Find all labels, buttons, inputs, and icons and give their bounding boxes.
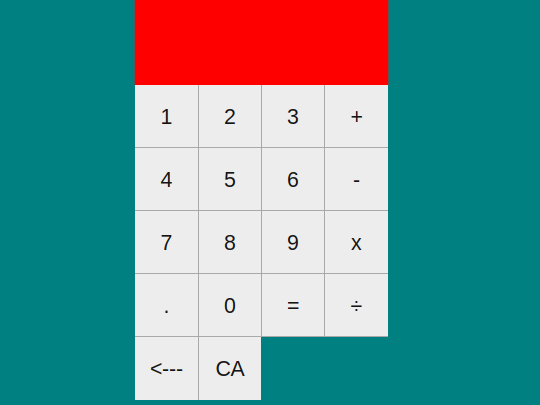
staticText: . xyxy=(163,294,169,317)
staticText: 7 xyxy=(160,231,172,254)
button[interactable]: 4 xyxy=(135,148,198,211)
staticText: 6 xyxy=(287,168,299,191)
staticText: 2 xyxy=(224,105,236,128)
button[interactable]: 3 xyxy=(262,85,324,148)
button[interactable]: CA xyxy=(199,337,261,400)
staticText: 3 xyxy=(287,105,299,128)
button[interactable]: 8 xyxy=(199,211,261,274)
button[interactable]: <--- xyxy=(135,337,198,400)
staticText: + xyxy=(350,105,362,128)
button[interactable]: 1 xyxy=(135,85,198,148)
button[interactable]: + xyxy=(325,85,388,148)
staticText: 0 xyxy=(224,294,236,317)
staticText: ÷ xyxy=(350,294,362,317)
staticText: - xyxy=(353,168,360,191)
staticText: <--- xyxy=(150,357,183,380)
button[interactable]: = xyxy=(262,274,324,337)
staticText: = xyxy=(287,294,299,317)
button[interactable]: 9 xyxy=(262,211,324,274)
button[interactable]: . xyxy=(135,274,198,337)
staticText: 9 xyxy=(287,231,299,254)
staticText: 1 xyxy=(160,105,172,128)
staticText: 5 xyxy=(224,168,236,191)
button[interactable]: 5 xyxy=(199,148,261,211)
button[interactable]: 7 xyxy=(135,211,198,274)
staticText: 8 xyxy=(224,231,236,254)
staticText: x xyxy=(351,231,362,254)
button[interactable]: - xyxy=(325,148,388,211)
button[interactable]: 0 xyxy=(199,274,261,337)
button[interactable]: x xyxy=(325,211,388,274)
staticText: CA xyxy=(215,357,244,380)
button[interactable]: 6 xyxy=(262,148,324,211)
button[interactable]: 2 xyxy=(199,85,261,148)
staticText: 4 xyxy=(160,168,172,191)
button[interactable]: ÷ xyxy=(325,274,388,337)
